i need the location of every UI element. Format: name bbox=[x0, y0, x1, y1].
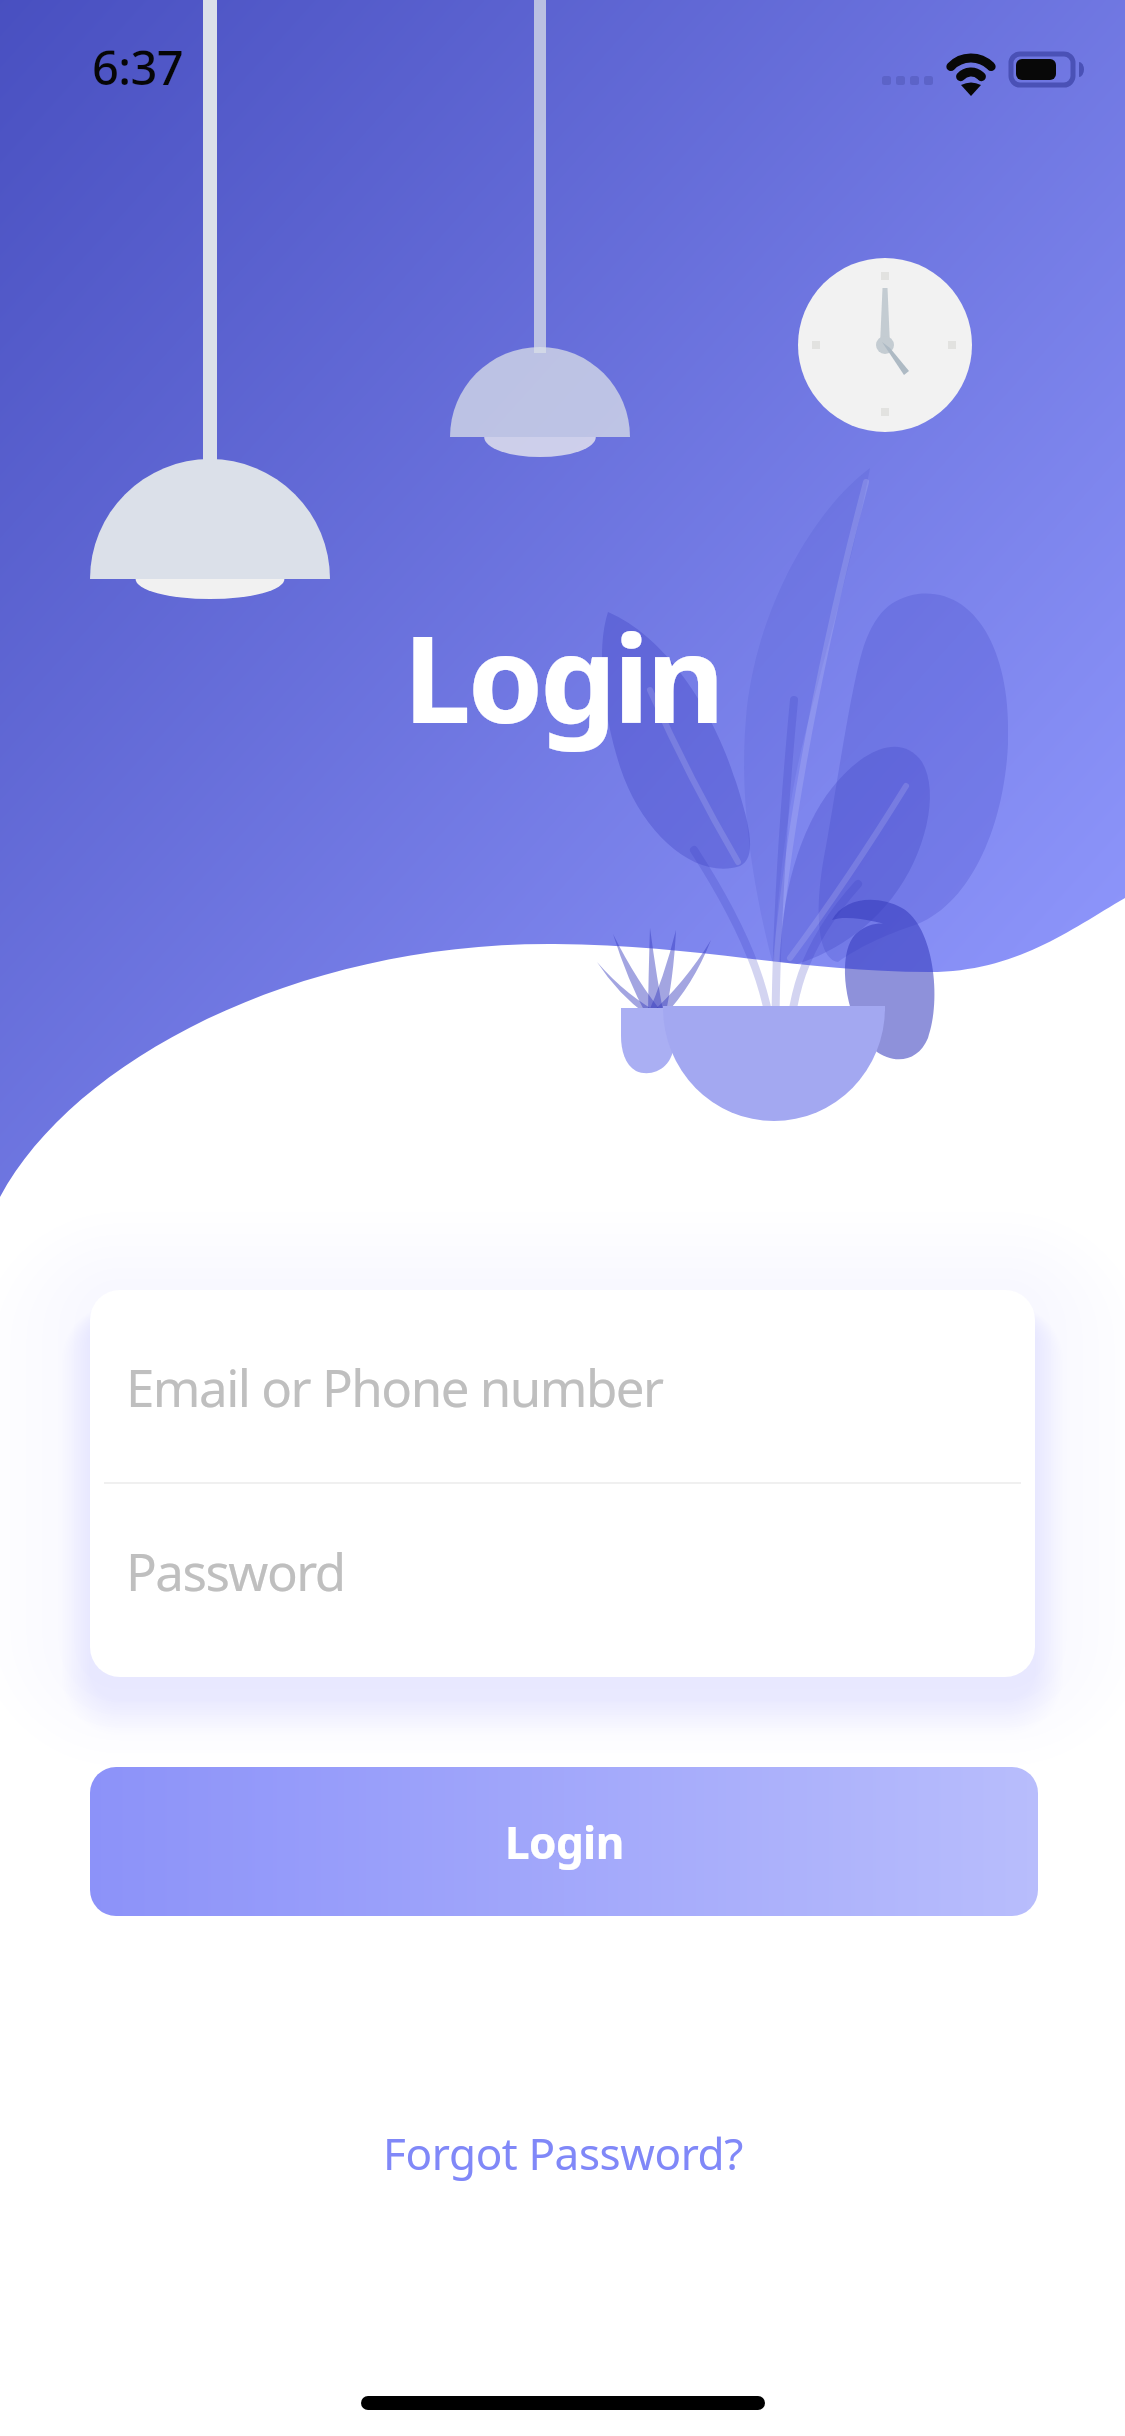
staticText: Login bbox=[505, 1812, 624, 1872]
staticText: Password bbox=[126, 1536, 345, 1605]
staticText: Forgot Password? bbox=[383, 2123, 743, 2183]
button[interactable]: Password bbox=[90, 1484, 1035, 1677]
button[interactable]: Forgot Password? bbox=[0, 2103, 1125, 2203]
staticText: Login bbox=[0, 594, 1125, 759]
staticText: 6:37 bbox=[92, 35, 184, 99]
other: Home indicator bbox=[361, 2396, 765, 2410]
button[interactable]: Login bbox=[90, 1767, 1038, 1916]
button[interactable]: Email or Phone number bbox=[90, 1290, 1035, 1482]
staticText: Email or Phone number bbox=[126, 1352, 663, 1421]
